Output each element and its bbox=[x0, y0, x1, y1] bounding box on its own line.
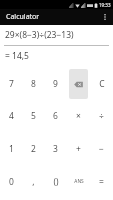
staticText: Calculator bbox=[6, 12, 40, 22]
button[interactable]: ANS bbox=[69, 166, 88, 197]
button[interactable]: × bbox=[69, 101, 88, 131]
staticText: , bbox=[32, 176, 35, 188]
staticText: ANS bbox=[74, 178, 84, 185]
staticText: − bbox=[99, 143, 104, 155]
button[interactable]: 3 bbox=[46, 133, 65, 164]
button[interactable]: 7 bbox=[2, 69, 20, 99]
button[interactable]: + bbox=[69, 133, 88, 164]
button[interactable]: ÷ bbox=[92, 101, 111, 131]
button[interactable]: C bbox=[92, 69, 111, 99]
button[interactable]: − bbox=[92, 133, 111, 164]
staticText: × bbox=[76, 110, 81, 122]
staticText: 8 bbox=[31, 78, 36, 90]
staticText: 7 bbox=[9, 78, 14, 90]
staticText: = bbox=[99, 176, 104, 188]
staticText: () bbox=[53, 176, 59, 188]
staticText: C bbox=[99, 78, 105, 90]
button[interactable]: 6 bbox=[46, 101, 65, 131]
button[interactable]: 2 bbox=[24, 133, 42, 164]
button[interactable]: Backspace bbox=[69, 69, 88, 99]
button[interactable]: , bbox=[24, 166, 42, 197]
staticText: + bbox=[76, 143, 81, 155]
staticText: 0 bbox=[9, 176, 14, 188]
staticText: 4 bbox=[9, 110, 14, 122]
button[interactable]: 8 bbox=[24, 69, 42, 99]
staticText: 29×(8−3)÷(23−13) bbox=[5, 29, 74, 41]
button[interactable]: 4 bbox=[2, 101, 20, 131]
staticText: 19:33 bbox=[99, 2, 111, 8]
staticText: = 14,5 bbox=[5, 50, 29, 62]
button[interactable]: 1 bbox=[2, 133, 20, 164]
button[interactable]: 0 bbox=[2, 166, 20, 197]
button[interactable]: More options bbox=[97, 9, 113, 25]
staticText: 1 bbox=[9, 143, 14, 155]
button[interactable]: 9 bbox=[46, 69, 65, 99]
button[interactable]: = bbox=[92, 166, 111, 197]
staticText: 3 bbox=[53, 143, 58, 155]
button[interactable]: () bbox=[46, 166, 65, 197]
staticText: 6 bbox=[53, 110, 58, 122]
staticText: 2 bbox=[31, 143, 36, 155]
button[interactable]: 5 bbox=[24, 101, 42, 131]
staticText: 9 bbox=[53, 78, 58, 90]
staticText: ÷ bbox=[99, 110, 104, 122]
staticText: 5 bbox=[31, 110, 36, 122]
